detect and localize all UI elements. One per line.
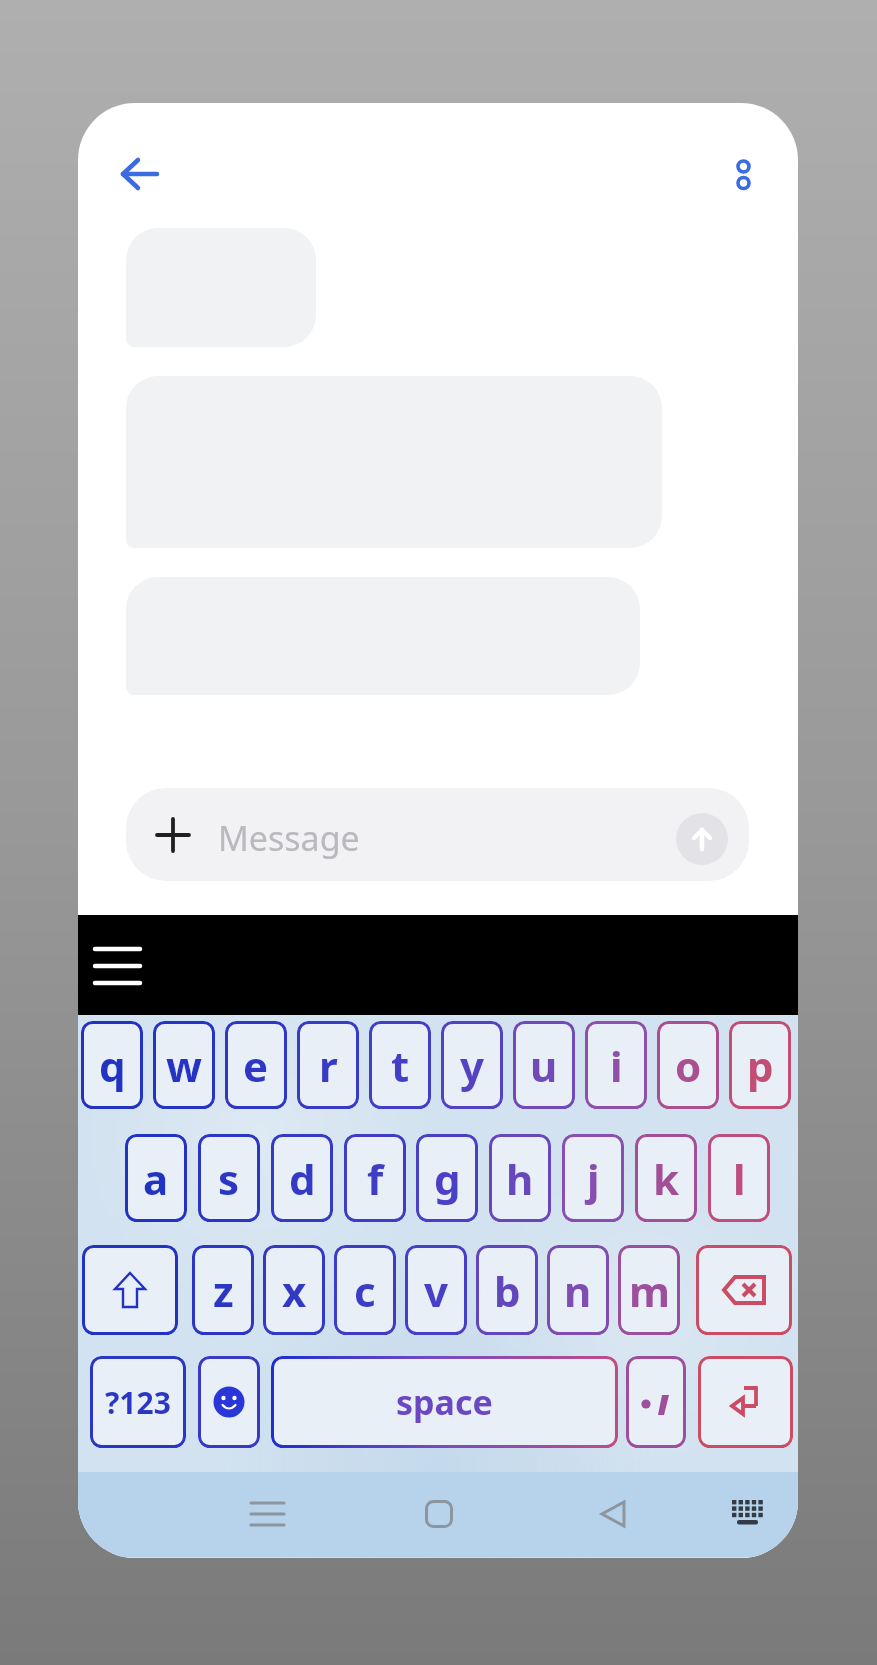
button[interactable]: o: [657, 1021, 719, 1109]
staticText: x: [282, 1262, 307, 1319]
staticText: o: [675, 1037, 702, 1094]
staticText: space: [396, 1379, 493, 1425]
button[interactable]: [250, 1500, 286, 1528]
staticText: z: [213, 1262, 234, 1319]
button[interactable]: Message: [126, 788, 749, 881]
staticText: l: [733, 1150, 746, 1207]
staticText: m: [629, 1262, 670, 1319]
staticText: h: [506, 1150, 534, 1207]
staticText: j: [587, 1150, 600, 1207]
button[interactable]: [626, 1356, 686, 1448]
staticText: c: [354, 1262, 376, 1319]
staticText: v: [424, 1262, 448, 1319]
button[interactable]: g: [416, 1134, 478, 1222]
button[interactable]: [730, 1500, 766, 1528]
button[interactable]: p: [729, 1021, 791, 1109]
staticText: f: [367, 1150, 384, 1207]
button[interactable]: [726, 155, 762, 199]
staticText: a: [143, 1150, 169, 1207]
button[interactable]: u: [513, 1021, 575, 1109]
button[interactable]: k: [635, 1134, 697, 1222]
button[interactable]: t: [369, 1021, 431, 1109]
button[interactable]: ?123: [90, 1356, 186, 1448]
staticText: Message: [218, 815, 360, 861]
button[interactable]: [95, 945, 141, 987]
staticText: y: [460, 1037, 484, 1094]
button[interactable]: [82, 1245, 178, 1335]
button[interactable]: y: [441, 1021, 503, 1109]
button[interactable]: z: [192, 1245, 254, 1335]
staticText: ?123: [105, 1382, 171, 1423]
staticText: k: [653, 1150, 680, 1207]
button[interactable]: f: [344, 1134, 406, 1222]
button[interactable]: [114, 152, 158, 196]
staticText: g: [434, 1150, 461, 1207]
staticText: n: [564, 1262, 592, 1319]
button[interactable]: n: [547, 1245, 609, 1335]
staticText: i: [610, 1037, 623, 1094]
staticText: t: [391, 1037, 410, 1094]
button[interactable]: m: [618, 1245, 680, 1335]
button[interactable]: [696, 1245, 792, 1335]
button[interactable]: x: [263, 1245, 325, 1335]
staticText: e: [243, 1037, 269, 1094]
staticText: p: [747, 1037, 774, 1094]
button[interactable]: w: [153, 1021, 215, 1109]
button[interactable]: i: [585, 1021, 647, 1109]
button[interactable]: d: [271, 1134, 333, 1222]
button[interactable]: b: [476, 1245, 538, 1335]
button[interactable]: [198, 1356, 260, 1448]
button[interactable]: s: [198, 1134, 260, 1222]
button[interactable]: v: [405, 1245, 467, 1335]
staticText: w: [166, 1037, 202, 1094]
button[interactable]: e: [225, 1021, 287, 1109]
button[interactable]: l: [708, 1134, 770, 1222]
button[interactable]: a: [125, 1134, 187, 1222]
button[interactable]: [676, 813, 728, 865]
staticText: r: [319, 1037, 338, 1094]
button[interactable]: [698, 1356, 793, 1448]
button[interactable]: r: [297, 1021, 359, 1109]
button[interactable]: [599, 1500, 627, 1528]
button[interactable]: c: [334, 1245, 396, 1335]
staticText: u: [530, 1037, 558, 1094]
staticText: b: [494, 1262, 521, 1319]
staticText: s: [218, 1150, 240, 1207]
button[interactable]: q: [81, 1021, 143, 1109]
staticText: d: [289, 1150, 316, 1207]
button[interactable]: [425, 1500, 453, 1528]
staticText: q: [99, 1037, 126, 1094]
button[interactable]: h: [489, 1134, 551, 1222]
button[interactable]: space: [271, 1356, 618, 1448]
button[interactable]: j: [562, 1134, 624, 1222]
